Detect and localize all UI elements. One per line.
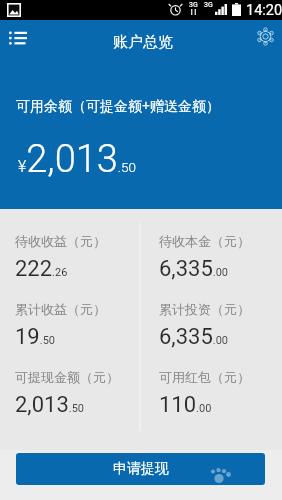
staticText: 19.50 (15, 324, 55, 350)
staticText: 2,013.50 (15, 392, 85, 418)
staticText: 6,335.00 (159, 256, 229, 282)
staticText: 可用红包（元） (159, 369, 250, 385)
staticText: 待收本金（元） (159, 233, 250, 249)
staticText: 3G (204, 1, 213, 9)
button[interactable]: Menu (0, 20, 36, 64)
staticText: 累计收益（元） (15, 301, 106, 317)
staticText: 222.26 (15, 256, 68, 282)
button[interactable]: 申请提现 (16, 453, 265, 485)
staticText: 可用余额（可提金额+赠送金额） (16, 96, 221, 115)
staticText: 待收收益（元） (15, 233, 106, 249)
button[interactable]: Settings (246, 20, 282, 64)
staticText: ¥2,013.50 (18, 137, 137, 182)
staticText: 3G (189, 1, 198, 9)
staticText: 6,335.00 (159, 324, 229, 350)
staticText: 累计投资（元） (159, 301, 250, 317)
staticText: 可提现金额（元） (15, 369, 119, 385)
staticText: 14:20 (246, 2, 282, 19)
staticText: 申请提现 (113, 460, 169, 478)
staticText: 110.00 (159, 392, 212, 418)
staticText: 账户总览 (113, 33, 173, 52)
